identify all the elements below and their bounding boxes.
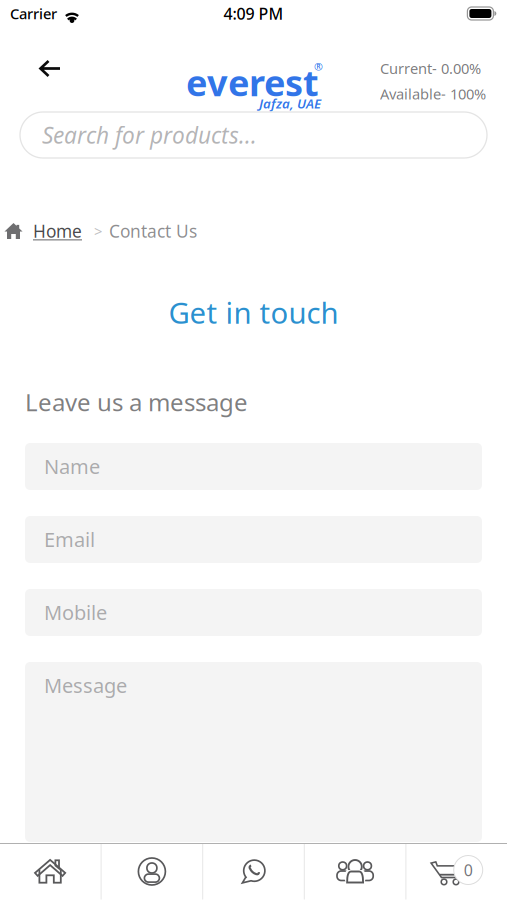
staticText: Home bbox=[33, 219, 82, 242]
button[interactable]: Home bbox=[23, 219, 82, 242]
button[interactable]: Search for products... bbox=[0, 112, 507, 158]
staticText: everest bbox=[186, 58, 319, 106]
staticText: Email bbox=[44, 526, 95, 553]
staticText: ® bbox=[314, 59, 323, 74]
staticText: Current- 0.00% bbox=[380, 58, 481, 78]
staticText: > bbox=[94, 221, 102, 241]
staticText: Mobile bbox=[44, 599, 107, 626]
button[interactable]: Cart bbox=[406, 843, 507, 900]
button[interactable]: Back bbox=[27, 48, 73, 88]
staticText: 4:09 PM bbox=[223, 3, 283, 24]
staticText: Name bbox=[44, 453, 100, 480]
button[interactable]: WhatsApp bbox=[203, 843, 304, 900]
button[interactable]: Community bbox=[305, 843, 405, 900]
button[interactable]: Home bbox=[0, 843, 101, 900]
staticText: Contact Us bbox=[109, 219, 197, 242]
staticText: Search for products... bbox=[42, 120, 257, 150]
staticText: Get in touch bbox=[168, 293, 338, 332]
staticText: Leave us a message bbox=[25, 386, 248, 418]
button[interactable]: Account bbox=[102, 843, 202, 900]
staticText: Jafza, UAE bbox=[259, 94, 321, 112]
staticText: 0 bbox=[464, 859, 473, 881]
staticText: Carrier bbox=[10, 4, 57, 23]
staticText: Message bbox=[44, 672, 127, 699]
staticText: Available- 100% bbox=[380, 84, 486, 103]
